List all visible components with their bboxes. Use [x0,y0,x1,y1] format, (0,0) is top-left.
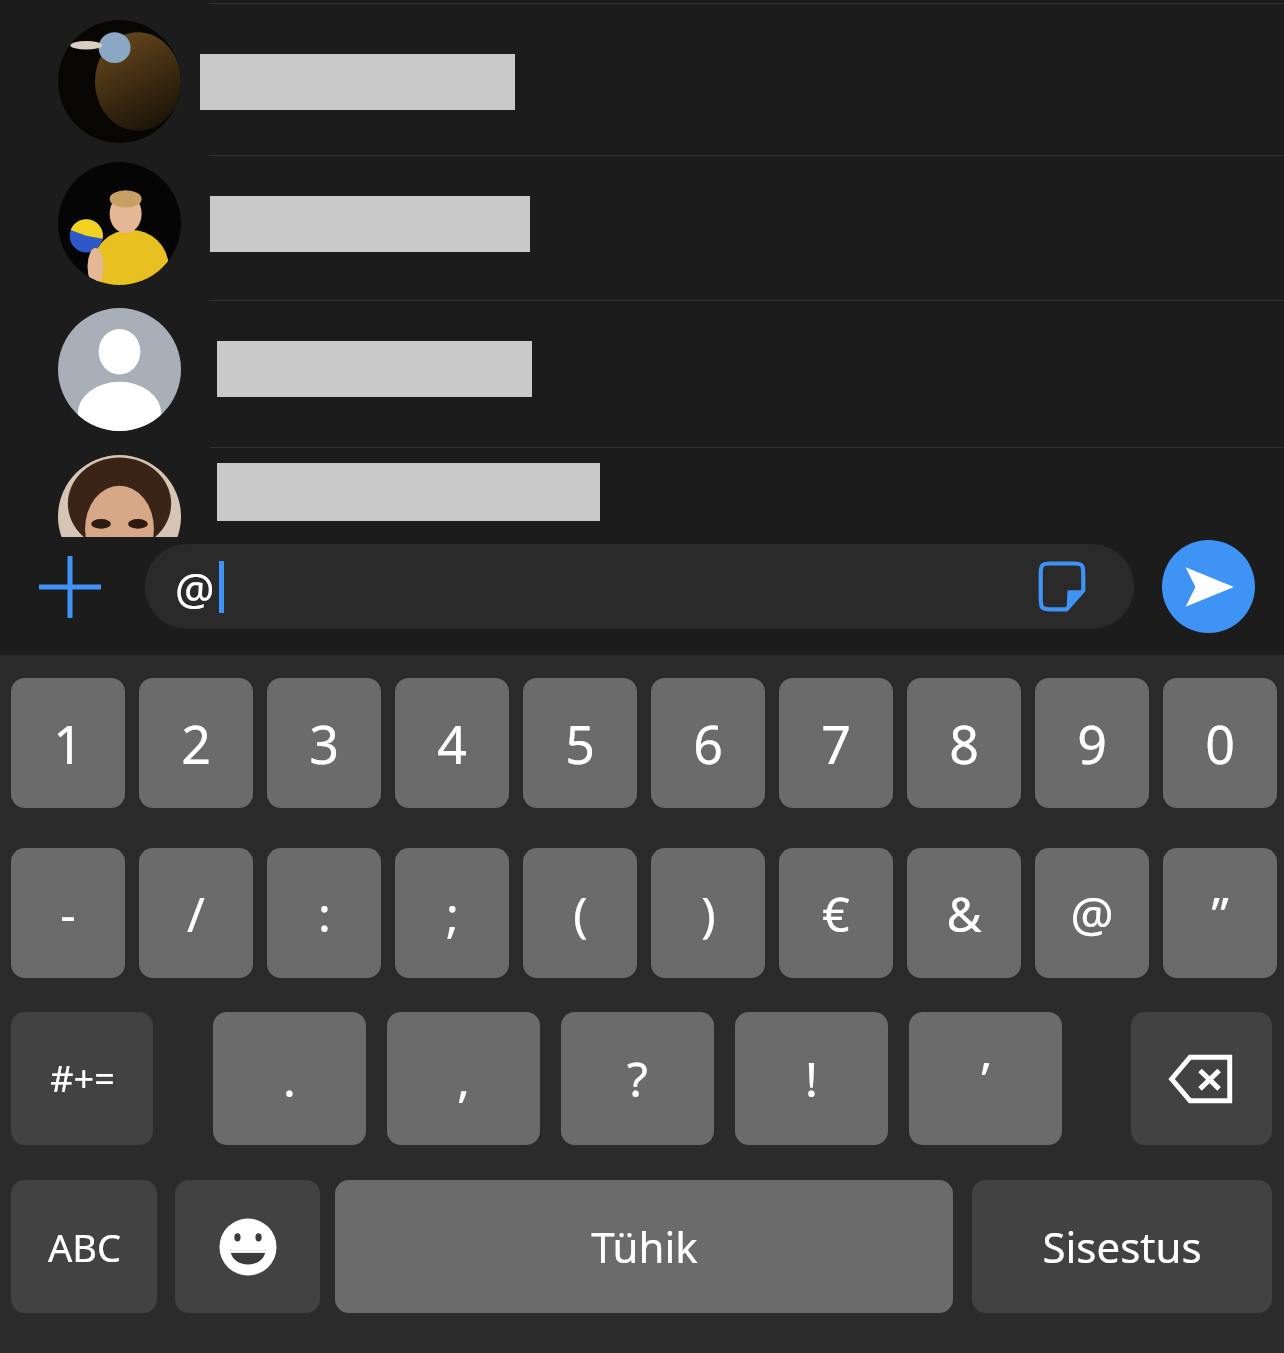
staticText: ? [627,1046,648,1111]
button[interactable]: ; [395,848,509,978]
button[interactable]: 6 [651,678,765,808]
staticText: € [822,881,850,946]
staticText: #+= [50,1054,115,1103]
button[interactable]: 2 [139,678,253,808]
button[interactable]: 9 [1035,678,1149,808]
button[interactable]: ’ [909,1012,1062,1145]
button[interactable]: Emoji [175,1180,320,1313]
button[interactable]: 7 [779,678,893,808]
button[interactable]: - [11,848,125,978]
staticText: 6 [693,708,723,779]
button[interactable]: , [387,1012,540,1145]
staticText: - [60,881,76,946]
staticText: 7 [821,708,851,779]
button[interactable]: ? [561,1012,714,1145]
button[interactable]: 3 [267,678,381,808]
staticText: & [946,881,982,946]
button[interactable]: 8 [907,678,1021,808]
staticText: / [187,881,205,946]
button[interactable]: : [267,848,381,978]
button[interactable]: Sisestus [972,1180,1272,1313]
button[interactable]: ABC [11,1180,157,1313]
staticText: ” [1211,881,1229,946]
staticText: ) [701,881,716,946]
button[interactable]: Tühik [335,1180,953,1313]
button[interactable]: Backspace [1131,1012,1272,1145]
button[interactable]: ” [1163,848,1277,978]
staticText: ( [573,881,588,946]
button[interactable]: & [907,848,1021,978]
button[interactable]: #+= [11,1012,153,1145]
staticText: 0 [1205,708,1235,779]
button[interactable]: @ [145,544,1134,629]
button[interactable]: . [213,1012,366,1145]
staticText: 9 [1077,708,1107,779]
button[interactable]: ( [523,848,637,978]
button[interactable]: @ [1035,848,1149,978]
staticText: @ [1070,881,1114,946]
button[interactable]: 5 [523,678,637,808]
button[interactable]: 1 [11,678,125,808]
staticText: 8 [949,708,979,779]
staticText: ; [446,881,459,946]
staticText: ’ [981,1046,990,1111]
staticText: Sisestus [1042,1218,1202,1275]
button[interactable]: / [139,848,253,978]
staticText: 4 [437,708,467,779]
button[interactable]: ) [651,848,765,978]
staticText: @ [175,558,215,618]
staticText: , [457,1046,470,1111]
button[interactable]: Attach [20,537,120,637]
button[interactable]: 4 [395,678,509,808]
staticText: 1 [53,708,83,779]
button[interactable]: 0 [1163,678,1277,808]
staticText: 5 [565,708,595,779]
staticText: ABC [48,1221,121,1273]
staticText: Tühik [591,1218,698,1275]
staticText: ! [805,1046,818,1111]
staticText: . [283,1046,296,1111]
button[interactable]: ! [735,1012,888,1145]
staticText: 2 [181,708,211,779]
button[interactable]: € [779,848,893,978]
button[interactable]: Send [1162,540,1255,633]
staticText: : [318,881,331,946]
staticText: 3 [309,708,339,779]
button[interactable]: Stickers [1033,558,1091,616]
